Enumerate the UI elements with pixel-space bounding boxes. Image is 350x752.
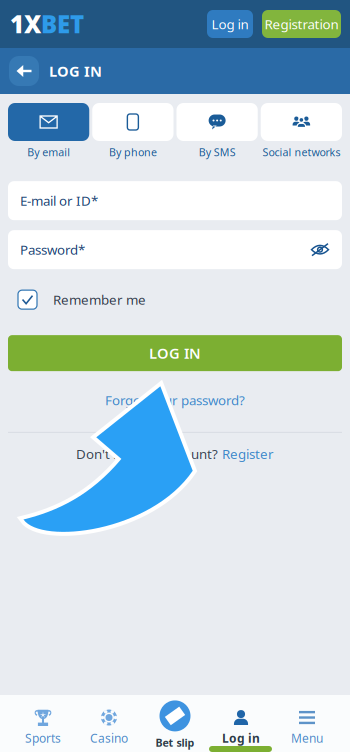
staticText: Menu	[291, 730, 323, 746]
staticText: Register	[222, 445, 274, 463]
button[interactable]: Back	[9, 56, 39, 86]
staticText: Social networks	[262, 145, 340, 159]
staticText: Sports	[25, 730, 61, 746]
staticText: Log in	[211, 15, 248, 33]
staticText: By email	[27, 145, 70, 159]
button[interactable]: Remember me	[17, 289, 38, 310]
button[interactable]: By phone	[92, 103, 173, 159]
button[interactable]: Bet slip	[142, 705, 208, 750]
staticText: BET	[41, 8, 84, 40]
staticText: Don't have an account?	[76, 445, 218, 463]
button[interactable]: Sports	[10, 709, 76, 746]
staticText: By SMS	[199, 145, 236, 159]
staticText: E-mail or ID*	[20, 192, 98, 209]
button[interactable]: Social networks	[261, 103, 342, 159]
button[interactable]: Forgot your password?	[105, 386, 245, 414]
staticText: Log in	[222, 730, 260, 746]
staticText: Remember me	[53, 291, 146, 308]
staticText: By phone	[109, 145, 157, 159]
staticText: Registration	[264, 15, 338, 33]
button[interactable]: Register	[222, 445, 274, 463]
button[interactable]: Log in	[207, 10, 253, 38]
button[interactable]: By email	[8, 103, 89, 159]
staticText: Bet slip	[155, 735, 194, 750]
staticText: 1X	[10, 8, 41, 40]
button[interactable]: Registration	[262, 10, 341, 38]
button[interactable]: By SMS	[176, 103, 258, 159]
button[interactable]: Menu	[274, 709, 340, 746]
button[interactable]: Log in	[208, 709, 274, 746]
button[interactable]: LOG IN	[8, 335, 342, 371]
staticText: Casino	[90, 730, 128, 746]
staticText: LOG IN	[149, 343, 201, 363]
staticText: LOG IN	[49, 61, 102, 81]
staticText: Forgot your password?	[105, 391, 245, 409]
button[interactable]: Casino	[76, 709, 142, 746]
button[interactable]: Show password	[308, 239, 332, 261]
staticText: Password*	[20, 241, 85, 258]
